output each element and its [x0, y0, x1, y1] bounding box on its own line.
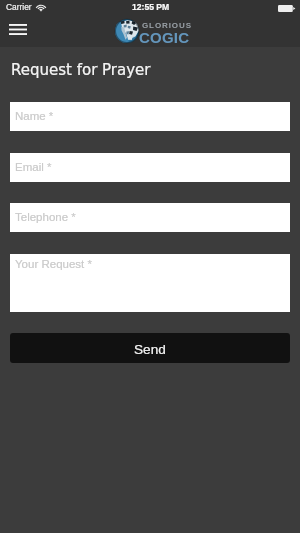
staticText: Send	[134, 342, 166, 357]
button[interactable]: Telephone *	[10, 203, 290, 232]
staticText: Email *	[15, 161, 52, 174]
staticText: Request for Prayer	[11, 61, 151, 78]
staticText: 12:55 PM	[132, 2, 170, 12]
staticText: Telephone *	[15, 211, 76, 224]
staticText: GLORIOUS	[142, 21, 192, 30]
staticText: COGIC	[139, 29, 190, 46]
staticText: Name *	[15, 110, 54, 123]
button[interactable]: Name *	[10, 102, 290, 131]
button[interactable]: Open navigation menu	[4, 18, 32, 40]
button[interactable]: Your Request *	[10, 254, 290, 312]
button[interactable]: Email *	[10, 153, 290, 182]
staticText: Your Request *	[15, 258, 92, 271]
staticText: Carrier	[6, 2, 32, 11]
button[interactable]: Send	[10, 333, 290, 363]
